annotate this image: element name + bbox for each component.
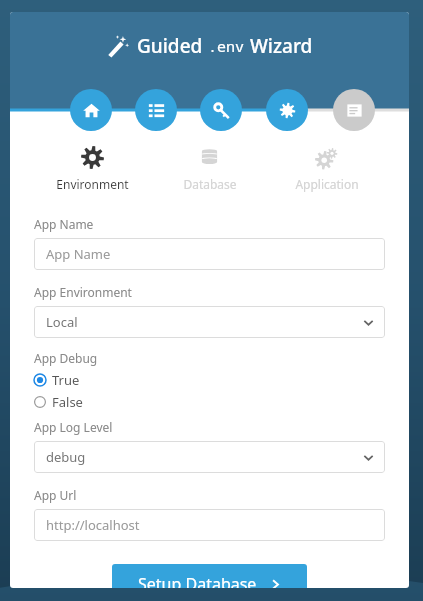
- staticText: Application: [295, 176, 359, 192]
- staticText: Wizard: [245, 33, 313, 59]
- staticText: http://localhost: [46, 516, 140, 534]
- button[interactable]: Application: [268, 142, 385, 196]
- staticText: App Environment: [34, 284, 132, 300]
- staticText: App Name: [46, 245, 111, 263]
- staticText: App Log Level: [34, 419, 113, 435]
- button[interactable]: False: [34, 391, 83, 413]
- staticText: Database: [183, 176, 237, 192]
- staticText: .env: [208, 36, 245, 56]
- button[interactable]: Home: [70, 89, 112, 131]
- staticText: True: [52, 371, 80, 389]
- staticText: App Name: [34, 216, 94, 232]
- button[interactable]: Summary: [333, 89, 375, 131]
- staticText: False: [52, 393, 83, 411]
- staticText: App Debug: [34, 350, 98, 366]
- staticText: Local: [46, 313, 78, 331]
- staticText: debug: [46, 448, 86, 466]
- staticText: Guided: [137, 33, 208, 59]
- button[interactable]: Database: [151, 142, 268, 196]
- button[interactable]: App Name: [34, 238, 385, 270]
- button[interactable]: debug: [34, 441, 385, 473]
- button[interactable]: Local: [34, 306, 385, 338]
- button[interactable]: List: [135, 89, 177, 131]
- staticText: Environment: [56, 176, 129, 192]
- button[interactable]: Keys: [200, 89, 242, 131]
- button[interactable]: Settings: [266, 89, 308, 131]
- button[interactable]: Environment: [34, 142, 151, 196]
- button[interactable]: http://localhost: [34, 509, 385, 541]
- button[interactable]: True: [34, 369, 80, 391]
- button[interactable]: Setup Database: [112, 564, 307, 588]
- staticText: App Url: [34, 487, 77, 503]
- staticText: Setup Database: [138, 573, 257, 588]
